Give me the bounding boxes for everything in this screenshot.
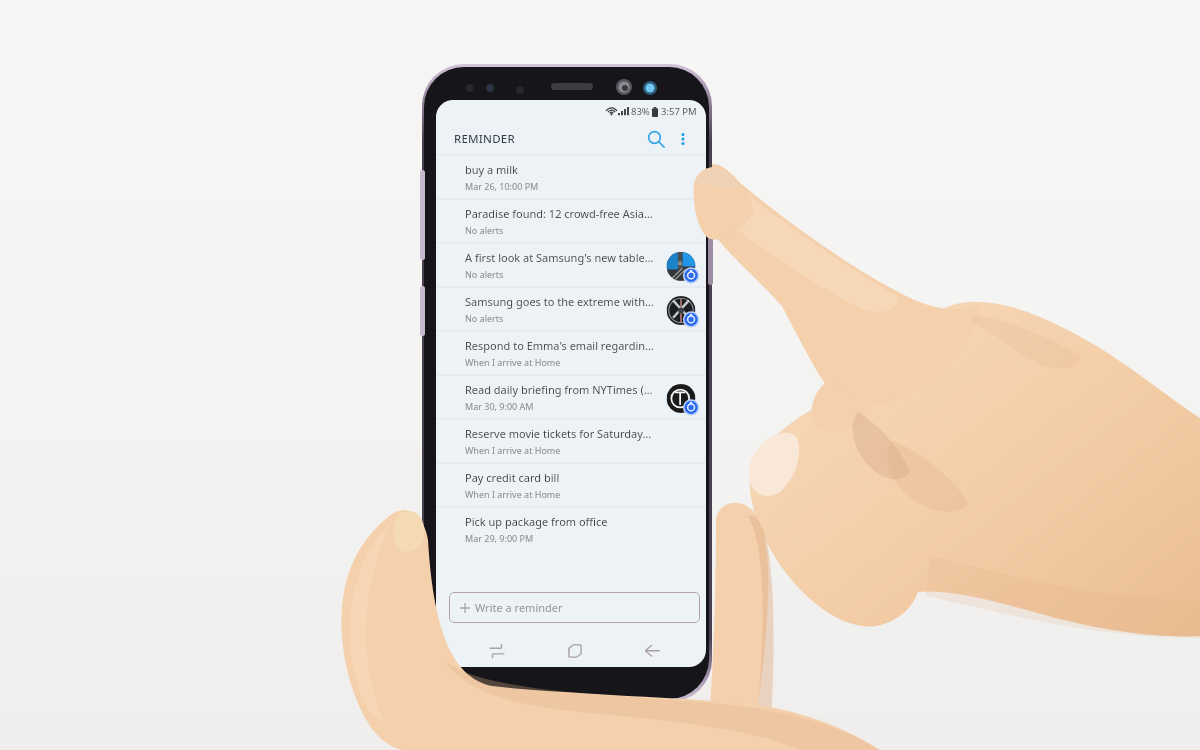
staticText: Pay credit card bill (465, 470, 560, 485)
button[interactable]: Write a reminder (449, 592, 700, 623)
button[interactable]: Reserve movie tickets for Saturday… (436, 419, 706, 463)
button[interactable]: Back (613, 635, 690, 667)
staticText: 3:57 PM (661, 105, 697, 118)
staticText: No alerts (465, 312, 504, 324)
staticText: REMINDER (454, 131, 515, 147)
staticText: 83% (631, 105, 650, 118)
staticText: When I arrive at Home (465, 444, 561, 456)
staticText: buy a milk (465, 162, 518, 177)
staticText: Mar 30, 9:00 AM (465, 400, 534, 412)
staticText: Mar 26, 10:00 PM (465, 180, 539, 192)
staticText: Write a reminder (475, 600, 563, 615)
staticText: A first look at Samsung's new table… (465, 250, 654, 265)
staticText: Mar 29, 9:00 PM (465, 532, 534, 544)
button[interactable]: Home (536, 635, 613, 667)
staticText: When I arrive at Home (465, 488, 561, 500)
button[interactable]: Search (645, 128, 667, 150)
staticText: Samsung goes to the extreme with… (465, 294, 654, 309)
staticText: Paradise found: 12 crowd-free Asia… (465, 206, 653, 221)
button[interactable]: Pick up package from office (436, 507, 706, 551)
staticText: No alerts (465, 268, 504, 280)
staticText: Respond to Emma's email regardin… (465, 338, 654, 353)
staticText: Pick up package from office (465, 514, 608, 529)
button[interactable]: buy a milk (436, 155, 706, 199)
button[interactable]: A first look at Samsung's new table… (436, 243, 706, 287)
button[interactable]: Read daily briefing from NYTimes (… (436, 375, 706, 419)
staticText: When I arrive at Home (465, 356, 561, 368)
button[interactable]: Pay credit card bill (436, 463, 706, 507)
button[interactable]: Recents (458, 635, 536, 667)
button[interactable]: Samsung goes to the extreme with… (436, 287, 706, 331)
button[interactable]: More options (675, 131, 691, 147)
staticText: Reserve movie tickets for Saturday… (465, 426, 652, 441)
button[interactable]: Paradise found: 12 crowd-free Asia… (436, 199, 706, 243)
staticText: Read daily briefing from NYTimes (… (465, 382, 653, 397)
button[interactable]: Respond to Emma's email regardin… (436, 331, 706, 375)
staticText: No alerts (465, 224, 504, 236)
